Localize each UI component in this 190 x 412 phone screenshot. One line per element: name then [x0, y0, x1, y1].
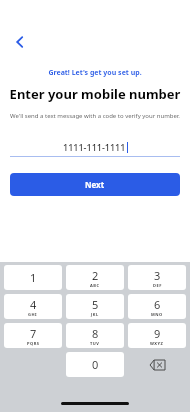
- staticText: 1: [30, 270, 37, 285]
- staticText: ABC: [90, 283, 100, 288]
- staticText: PQRS: [27, 341, 40, 346]
- button[interactable]: Back: [8, 30, 32, 54]
- button[interactable]: Delete: [128, 352, 186, 377]
- staticText: DEF: [153, 283, 162, 288]
- staticText: 7: [30, 326, 37, 341]
- button[interactable]: 0: [66, 352, 124, 377]
- staticText: 3: [154, 268, 161, 283]
- staticText: 5: [92, 297, 99, 312]
- button[interactable]: 6: [128, 294, 186, 319]
- staticText: 6: [154, 297, 161, 312]
- staticText: We'll send a text message with a code to…: [8, 112, 182, 120]
- button[interactable]: 3: [128, 265, 186, 290]
- staticText: 9: [154, 326, 161, 341]
- button[interactable]: Next: [10, 173, 180, 196]
- staticText: Next: [85, 179, 105, 190]
- button[interactable]: 1: [4, 265, 62, 290]
- staticText: TUV: [90, 341, 100, 346]
- staticText: WXYZ: [150, 341, 164, 346]
- staticText: 1111-111-1111: [63, 141, 126, 153]
- staticText: 8: [92, 326, 99, 341]
- staticText: Great! Let's get you set up.: [0, 68, 190, 78]
- staticText: MNO: [151, 312, 163, 317]
- button[interactable]: 7: [4, 323, 62, 348]
- staticText: JKL: [91, 312, 99, 317]
- button[interactable]: 8: [66, 323, 124, 348]
- button[interactable]: 5: [66, 294, 124, 319]
- staticText: GHI: [28, 312, 38, 317]
- staticText: 0: [92, 357, 99, 372]
- button[interactable]: 4: [4, 294, 62, 319]
- button[interactable]: 2: [66, 265, 124, 290]
- button[interactable]: 9: [128, 323, 186, 348]
- staticText: Enter your mobile number: [0, 85, 190, 103]
- button[interactable]: 1111-111-1111: [10, 138, 180, 156]
- staticText: 4: [30, 297, 37, 312]
- staticText: 2: [92, 268, 99, 283]
